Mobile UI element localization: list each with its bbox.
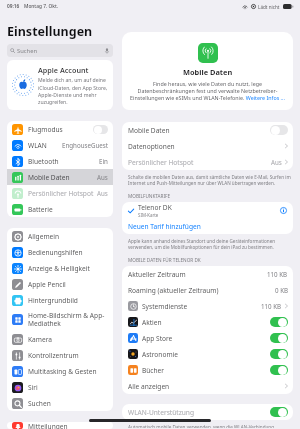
button[interactable]: Alle anzeigen xyxy=(122,378,293,394)
button[interactable]: Home-Bildschirm & App-Mediathek xyxy=(7,308,113,331)
staticText: Mobile Daten xyxy=(128,126,270,135)
button[interactable]: Systemdienste xyxy=(122,298,293,314)
staticText: Neuen Tarif hinzufügen xyxy=(128,222,201,231)
button[interactable]: Bedienungshilfen xyxy=(7,244,113,260)
staticText: Ein xyxy=(99,157,108,165)
button[interactable]: Anzeige & Helligkeit xyxy=(7,260,113,276)
staticText: Bluetooth xyxy=(28,157,97,166)
button[interactable]: Datenoptionen xyxy=(122,138,293,154)
staticText: Einstellungen xyxy=(7,23,93,40)
staticText: Allgemein xyxy=(28,232,108,241)
staticText: Bedienungshilfen xyxy=(28,248,108,257)
staticText: Aktien xyxy=(142,318,270,327)
staticText: Roaming (aktueller Zeitraum) xyxy=(128,286,275,295)
staticText: Lädt nicht xyxy=(258,4,280,10)
button[interactable]: WLAN xyxy=(7,137,113,153)
staticText: Datenoptionen xyxy=(128,142,285,151)
button[interactable]: Hintergrundbild xyxy=(7,292,113,308)
button[interactable]: Roaming (aktueller Zeitraum) xyxy=(122,282,293,298)
staticText: 110 KB xyxy=(261,302,282,310)
staticText: Mobile Daten xyxy=(28,173,95,182)
staticText: Alle anzeigen xyxy=(128,382,285,391)
staticText: 09:16 xyxy=(7,3,20,10)
button[interactable]: Neuen Tarif hinzufügen xyxy=(122,219,293,234)
staticText: Persönlicher Hotspot xyxy=(28,189,95,198)
staticText: Astronomie xyxy=(142,350,270,359)
staticText: App Store xyxy=(142,334,270,343)
button[interactable]: Aktueller Zeitraum xyxy=(122,266,293,282)
staticText: Mitteilungen xyxy=(28,422,108,429)
staticText: Montag 7. Okt. xyxy=(24,3,59,10)
button[interactable]: Bluetooth xyxy=(7,153,113,169)
button[interactable]: Apple Account xyxy=(7,60,113,110)
staticText: MOBILE DATEN FÜR TELENOR DK xyxy=(128,257,201,263)
button[interactable]: Telenor DK xyxy=(122,202,293,219)
button[interactable]: Kontrollzentrum xyxy=(7,347,113,363)
staticText: EnghouseGuest xyxy=(62,141,108,149)
staticText: MOBILFUNKTARIFE xyxy=(128,193,171,199)
staticText: Multitasking & Gesten xyxy=(28,367,108,376)
button[interactable]: Persönlicher Hotspot xyxy=(122,154,293,170)
staticText: Aus xyxy=(97,189,108,197)
staticText: Anzeige & Helligkeit xyxy=(28,264,108,273)
staticText: Automatisch mobile Daten verwenden, wenn… xyxy=(128,424,291,428)
staticText: Apple Account xyxy=(38,65,89,75)
button[interactable]: Suchen xyxy=(7,44,113,57)
staticText: 0 KB xyxy=(275,286,288,294)
button[interactable]: Multitasking & Gesten xyxy=(7,363,113,379)
staticText: Apple kann anhand deines Standort und de… xyxy=(128,238,291,251)
staticText: Systemdienste xyxy=(142,302,261,311)
button[interactable]: Allgemein xyxy=(7,228,113,244)
button[interactable]: Siri xyxy=(7,379,113,395)
button[interactable]: Suchen xyxy=(7,395,113,411)
button[interactable]: Kamera xyxy=(7,331,113,347)
staticText: Suchen xyxy=(28,399,108,408)
staticText: Suchen xyxy=(17,47,37,55)
staticText: SIM-Karte xyxy=(138,212,159,218)
button[interactable]: Aktien xyxy=(122,314,293,330)
button[interactable]: Mobile Daten xyxy=(122,122,293,138)
staticText: Hintergrundbild xyxy=(28,296,108,305)
button[interactable]: App Store xyxy=(122,330,293,346)
staticText: Home-Bildschirm & App-Mediathek xyxy=(28,311,108,328)
staticText: Finde heraus, wie viele Daten du nutzt, … xyxy=(128,80,287,101)
staticText: Aus xyxy=(97,173,108,181)
staticText: 110 KB xyxy=(267,270,288,278)
button[interactable]: Mobile Daten xyxy=(7,169,113,185)
staticText: Kontrollzentrum xyxy=(28,351,108,360)
button[interactable]: Bücher xyxy=(122,362,293,378)
staticText: WLAN xyxy=(28,141,60,150)
staticText: Kamera xyxy=(28,335,108,344)
staticText: Mobile Daten xyxy=(183,67,233,77)
staticText: Persönlicher Hotspot xyxy=(128,158,271,167)
staticText: Aus xyxy=(271,158,282,166)
button[interactable]: WLAN-Unterstützung xyxy=(122,404,293,420)
button[interactable]: Apple Pencil xyxy=(7,276,113,292)
staticText: Telenor DK xyxy=(138,203,172,212)
button[interactable]: Flugmodus xyxy=(7,121,113,137)
button[interactable]: Astronomie xyxy=(122,346,293,362)
staticText: Aktueller Zeitraum xyxy=(128,270,267,279)
staticText: Apple Pencil xyxy=(28,280,108,289)
staticText: Schalte die mobilen Daten aus, damit säm… xyxy=(128,174,291,187)
staticText: Flugmodus xyxy=(28,125,93,134)
staticText: Batterie xyxy=(28,205,108,214)
staticText: Siri xyxy=(28,383,108,392)
staticText: Melde dich an, um auf deine iCloud-Daten… xyxy=(38,77,108,105)
button[interactable]: Batterie xyxy=(7,201,113,217)
button[interactable]: Persönlicher Hotspot xyxy=(7,185,113,201)
staticText: Bücher xyxy=(142,366,270,375)
staticText: WLAN-Unterstützung xyxy=(128,408,270,417)
button[interactable]: Mitteilungen xyxy=(7,422,113,429)
